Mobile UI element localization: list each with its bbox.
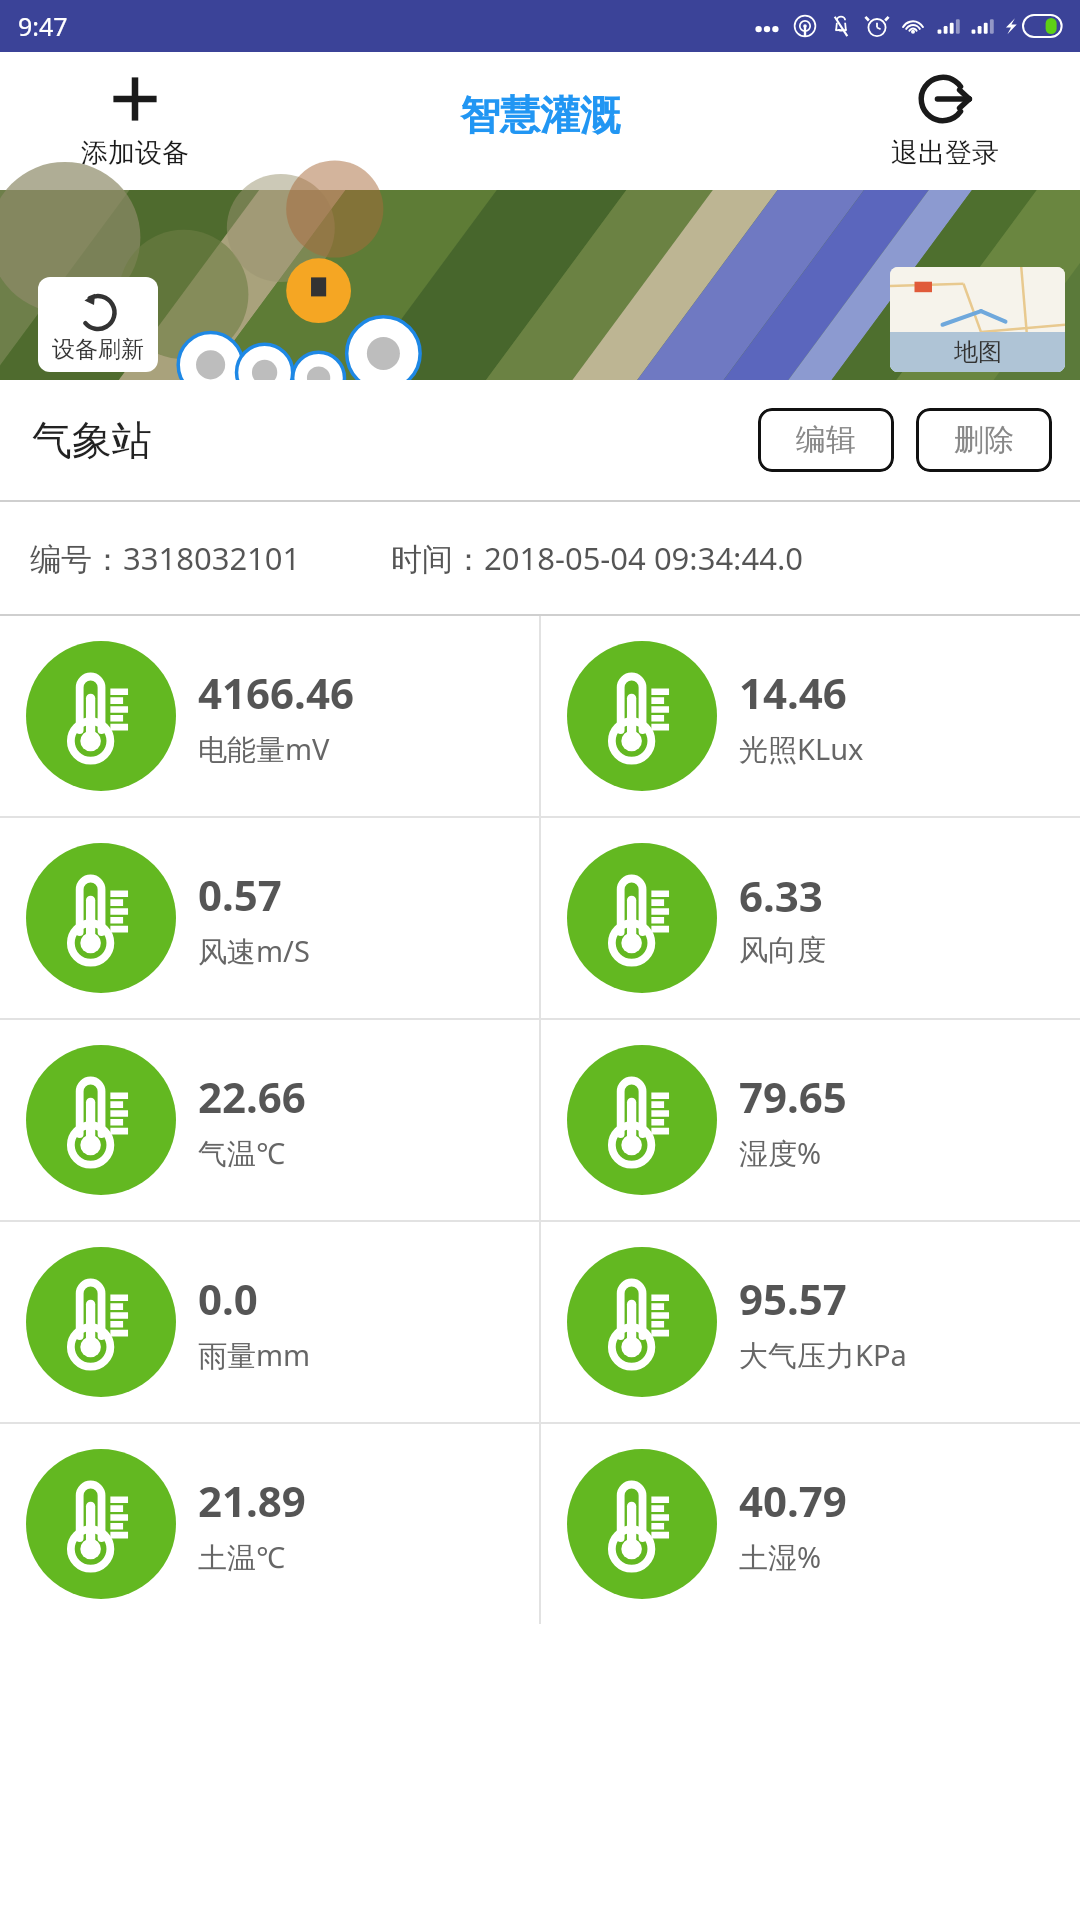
button[interactable]: 添加设备 [40,72,230,170]
staticText: 4166.46 [198,664,354,721]
button[interactable]: 14.46 [541,616,1080,816]
staticText: 退出登录 [891,136,999,170]
button[interactable]: 40.79 [541,1424,1080,1624]
button[interactable]: 95.57 [541,1222,1080,1422]
button[interactable]: 0.57 [0,818,539,1018]
staticText: 电能量mV [198,729,330,769]
button[interactable]: 4166.46 [0,616,539,816]
staticText: 智慧灌溉 [460,90,620,140]
staticText: 14.46 [739,664,847,721]
staticText: 95.57 [739,1270,847,1327]
staticText: 添加设备 [81,136,189,170]
staticText: 21.89 [198,1472,306,1529]
button[interactable]: 79.65 [541,1020,1080,1220]
staticText: 设备刷新 [52,335,144,364]
button[interactable]: 删除 [916,408,1052,472]
staticText: 编号：3318032101 [30,537,301,579]
staticText: 风向度 [739,932,826,969]
button[interactable]: 编辑 [758,408,894,472]
staticText: 大气压力KPa [739,1335,907,1375]
button[interactable]: 0.0 [0,1222,539,1422]
staticText: 时间：2018-05-04 09:34:44.0 [391,537,803,579]
staticText: 79.65 [739,1068,847,1125]
staticText: 气象站 [32,415,152,465]
button[interactable]: 设备刷新 [38,277,158,372]
staticText: 0.0 [198,1270,258,1327]
other: 退出登录 [918,72,972,126]
staticText: 气温℃ [198,1133,285,1173]
staticText: 湿度% [739,1133,822,1173]
staticText: 编辑 [796,421,856,459]
button[interactable]: 退出登录 [850,72,1040,170]
button[interactable]: 6.33 [541,818,1080,1018]
button[interactable]: 地图 [890,267,1065,372]
staticText: 风速m/S [198,931,310,971]
staticText: 光照KLux [739,729,864,769]
staticText: 40.79 [739,1472,847,1529]
staticText: 9:47 [18,9,68,43]
staticText: 地图 [954,337,1002,367]
staticText: 删除 [954,421,1014,459]
staticText: 22.66 [198,1068,306,1125]
button[interactable]: 21.89 [0,1424,539,1624]
staticText: 0.57 [198,866,282,923]
staticText: 土湿% [739,1537,822,1577]
button[interactable]: 22.66 [0,1020,539,1220]
staticText: 6.33 [739,867,823,924]
staticText: 土温℃ [198,1537,285,1577]
staticText: 雨量mm [198,1335,311,1375]
